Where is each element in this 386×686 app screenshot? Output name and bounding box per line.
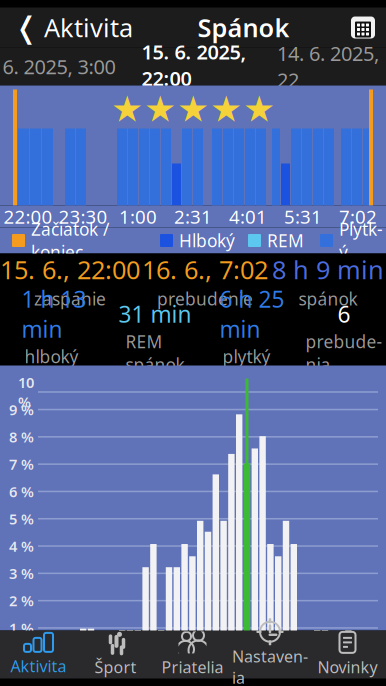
button[interactable]: 6. 2025, 3:00 (0, 47, 118, 85)
staticText: Hlboký (179, 229, 235, 252)
staticText: 15. 6., 22:00 (0, 253, 140, 286)
staticText: 15. 6. 2025, 22:00 (141, 38, 246, 91)
staticText: Aktivita (44, 11, 133, 44)
staticText: Plytký (339, 217, 383, 263)
button[interactable]: Kalendár (340, 7, 386, 47)
button[interactable]: Novinky (309, 630, 386, 678)
staticText: REM (267, 229, 304, 252)
staticText: 6 % (9, 482, 34, 501)
staticText: ★ (111, 88, 143, 129)
staticText: 2 % (9, 591, 34, 610)
staticText: Nastavenia (232, 646, 308, 686)
staticText: 1 h 13 min (21, 284, 86, 344)
staticText: REM spánok (125, 330, 184, 376)
staticText: 10 % (18, 372, 34, 411)
staticText: 2:31 (174, 204, 212, 229)
button[interactable]: Šport (77, 630, 154, 678)
staticText: 23:30 (58, 204, 107, 229)
staticText: 9 % (9, 400, 34, 419)
staticText: 5:31 (284, 204, 322, 229)
staticText: prebudenia (305, 330, 382, 376)
staticText: 22:00 (3, 204, 52, 229)
staticText: hlboký spánok (24, 345, 83, 391)
staticText: Spánok (197, 11, 289, 44)
staticText: ★ (144, 88, 176, 129)
button[interactable]: ❬ (0, 7, 147, 47)
button[interactable]: Nastavenia (231, 630, 309, 678)
button[interactable]: Priatelia (154, 630, 231, 678)
staticText: 6 (337, 299, 350, 329)
staticText: 6. 2025, 3:00 (2, 53, 115, 80)
button[interactable]: 14. 6. 2025, 22 (270, 47, 386, 85)
staticText: 5 % (9, 509, 34, 528)
staticText: Priatelia (161, 656, 223, 678)
staticText: Začiatok / koniec (31, 217, 109, 263)
staticText: ❬ (14, 11, 39, 44)
staticText: 16. 6., 7:02 (142, 253, 268, 286)
staticText: 3 % (9, 564, 34, 583)
staticText: spánok (298, 287, 357, 310)
staticText: plytký spánok (222, 345, 281, 391)
staticText: 7:02 (339, 204, 377, 229)
staticText: Aktivita (10, 655, 66, 677)
staticText: 6 h 25 min (219, 284, 284, 344)
staticText: prebudenie (157, 287, 253, 310)
staticText: 1:00 (119, 204, 157, 229)
staticText: ★ (243, 88, 275, 129)
staticText: 7 % (9, 454, 34, 474)
button[interactable]: 15. 6. 2025, 22:00 (118, 47, 270, 85)
staticText: 8 % (9, 427, 34, 447)
staticText: 8 h 9 min (272, 253, 384, 286)
staticText: zaspanie (34, 287, 106, 310)
staticText: 4 % (9, 536, 34, 556)
staticText: ★ (177, 88, 209, 129)
staticText: Novinky (317, 656, 377, 678)
staticText: 31 min (118, 299, 191, 329)
staticText: ★ (210, 88, 242, 129)
staticText: 4:01 (229, 204, 267, 229)
staticText: 1 % (9, 618, 34, 638)
staticText: Šport (94, 656, 136, 678)
staticText: 14. 6. 2025, 22 (277, 40, 379, 93)
button[interactable]: Aktivita (0, 630, 77, 678)
